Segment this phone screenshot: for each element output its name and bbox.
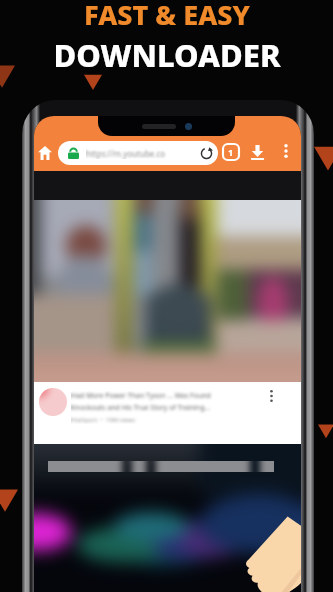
staticText: FAST & EASY bbox=[84, 0, 250, 33]
staticText: https://m.youtube.co bbox=[86, 148, 166, 159]
button[interactable]: Home bbox=[35, 143, 55, 163]
staticText: 1 bbox=[228, 146, 234, 158]
button[interactable]: Tabs bbox=[223, 144, 239, 160]
button[interactable]: https://m.youtube.co bbox=[58, 141, 218, 165]
button[interactable]: More bbox=[264, 389, 278, 403]
button[interactable]: Had More Power Than Tyson ... Was Found bbox=[34, 382, 301, 444]
staticText: DOWNLOADER bbox=[53, 34, 281, 76]
button[interactable]: More options bbox=[279, 144, 293, 158]
staticText: Had More Power Than Tyson ... Was Found bbox=[71, 391, 211, 401]
staticText: HistSport • 19M views bbox=[71, 416, 136, 424]
button[interactable]: Download bbox=[249, 144, 265, 160]
staticText: Knockouts and His True Story of Training… bbox=[71, 403, 211, 413]
